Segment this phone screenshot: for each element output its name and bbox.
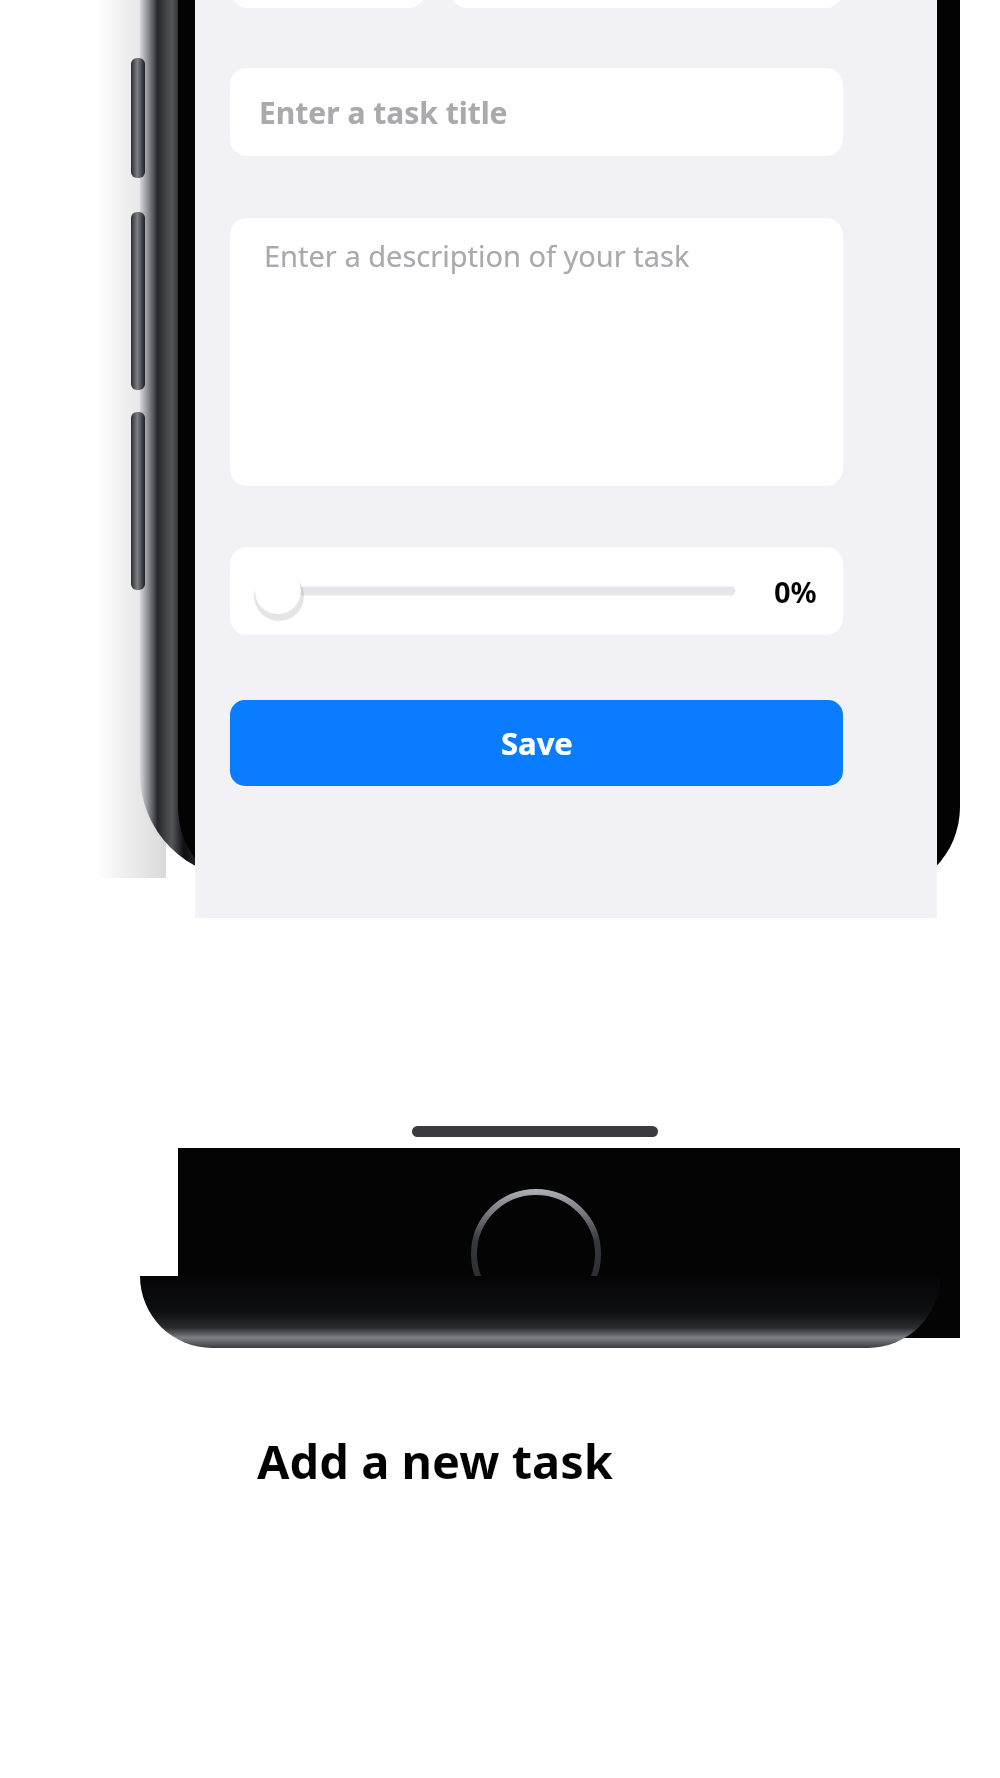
- staticText: Add a new task: [257, 1429, 613, 1493]
- button[interactable]: Save: [230, 700, 843, 786]
- button[interactable]: [230, 0, 426, 8]
- other: Home: [470, 1188, 602, 1320]
- staticText: Enter a task title: [259, 92, 508, 133]
- button[interactable]: Progress slider: [230, 547, 843, 635]
- staticText: 0%: [774, 572, 817, 611]
- staticText: Save: [501, 722, 573, 764]
- button[interactable]: Enter a task title: [230, 68, 843, 156]
- button[interactable]: Enter a description of your task: [230, 218, 843, 486]
- staticText: Enter a description of your task: [264, 236, 690, 275]
